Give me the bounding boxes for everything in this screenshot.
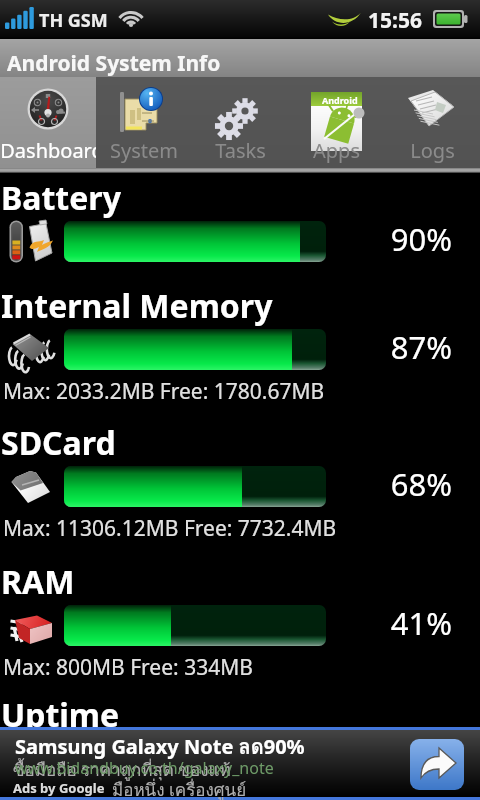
staticText: 90% xyxy=(332,218,452,260)
button[interactable]: Tasks xyxy=(192,77,288,168)
button[interactable]: Dashboard xyxy=(0,77,96,168)
staticText: Ads by Google xyxy=(13,779,105,797)
staticText: ซื้อมือถือ ราคาถูกที่สุด ของแท้ xyxy=(13,756,231,783)
staticText: System xyxy=(110,137,178,164)
staticText: www.bidandbuy.co.th/galaxy_note xyxy=(15,757,274,779)
staticText: Max: 2033.2MB Free: 1780.67MB xyxy=(3,377,325,406)
staticText: Max: 800MB Free: 334MB xyxy=(3,653,253,682)
staticText: Max: 11306.12MB Free: 7732.4MB xyxy=(3,514,337,543)
button[interactable]: Samsung Galaxy Note ลด90% xyxy=(0,730,480,797)
staticText: Dashboard xyxy=(0,137,96,164)
staticText: Android System Info xyxy=(7,49,221,78)
button[interactable]: Open advertisement xyxy=(410,739,464,790)
button[interactable]: System xyxy=(96,77,192,168)
staticText: RAM xyxy=(1,560,75,604)
staticText: Samsung Galaxy Note ลด90% xyxy=(15,731,305,763)
staticText: 41% xyxy=(332,602,452,644)
staticText: 87% xyxy=(332,326,452,368)
staticText: SDCard xyxy=(1,421,116,465)
staticText: Tasks xyxy=(215,137,266,164)
button[interactable]: Android xyxy=(288,77,384,168)
staticText: มือหนึ่ง เครื่องศูนย์ xyxy=(112,776,247,800)
button[interactable]: Logs xyxy=(384,77,480,168)
staticText: Uptime xyxy=(1,693,120,737)
staticText: Apps xyxy=(313,137,360,164)
staticText: Android xyxy=(322,94,358,106)
staticText: TH GSM xyxy=(39,8,108,33)
staticText: Battery xyxy=(1,176,121,220)
staticText: 68% xyxy=(332,463,452,505)
staticText: Internal Memory xyxy=(1,284,273,328)
staticText: Logs xyxy=(410,137,455,164)
staticText: 15:56 xyxy=(368,6,422,35)
